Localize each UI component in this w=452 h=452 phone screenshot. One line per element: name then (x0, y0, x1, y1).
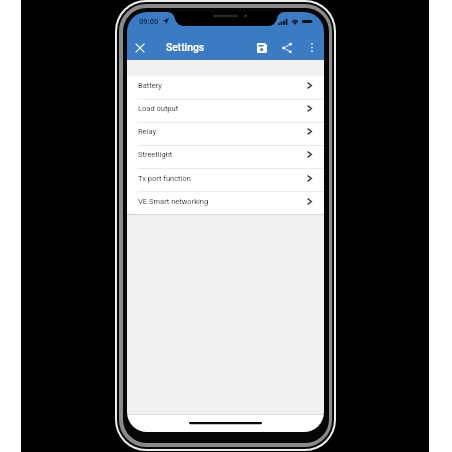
staticText: Tx port function (138, 174, 191, 183)
staticText: Streetlight (138, 150, 173, 159)
staticText: Battery (138, 81, 162, 90)
button[interactable]: More options (300, 36, 323, 59)
button[interactable]: Relay (127, 122, 324, 145)
staticText: Settings (166, 41, 205, 53)
button[interactable]: Save (250, 36, 273, 59)
staticText: Load output (138, 104, 179, 113)
button[interactable]: Tx port function (127, 169, 324, 192)
button[interactable]: Share (275, 36, 298, 59)
button[interactable]: Streetlight (127, 145, 324, 168)
button[interactable]: VE.Smart networking (127, 192, 324, 215)
button[interactable]: Close (128, 36, 151, 59)
button[interactable]: Battery (127, 76, 324, 99)
staticText: VE.Smart networking (138, 197, 209, 206)
staticText: 09:00 (139, 17, 159, 26)
staticText: Relay (138, 127, 156, 136)
button[interactable]: Load output (127, 99, 324, 122)
